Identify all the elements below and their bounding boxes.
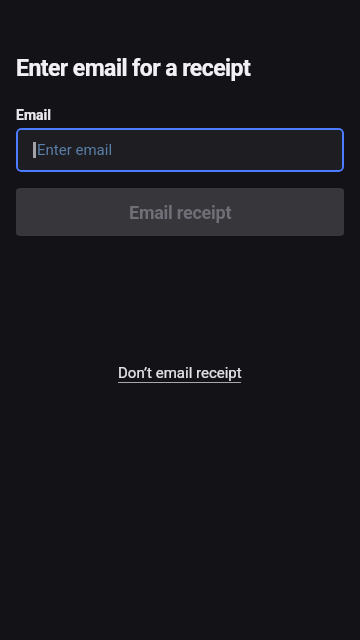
staticText: Enter email — [37, 141, 113, 159]
button[interactable]: Email receipt — [16, 188, 344, 236]
staticText: Don’t email receipt — [118, 364, 242, 382]
button[interactable]: Enter email — [16, 128, 344, 172]
staticText: Enter email for a receipt — [16, 55, 251, 82]
staticText: Email receipt — [129, 202, 232, 223]
button[interactable]: Don’t email receipt — [108, 358, 252, 388]
staticText: Email — [16, 107, 51, 123]
